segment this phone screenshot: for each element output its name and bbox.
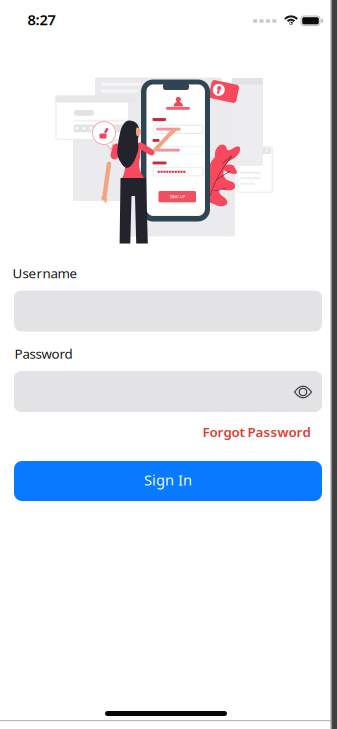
button[interactable]: Forgot Password: [202, 423, 310, 441]
staticText: ×: [264, 145, 269, 156]
staticText: Sign In: [144, 470, 192, 490]
button[interactable]: Sign In: [14, 461, 322, 501]
staticText: 8:27: [27, 10, 55, 29]
button[interactable]: Show password: [292, 385, 313, 399]
staticText: Forgot Password: [202, 423, 310, 441]
staticText: Password: [14, 345, 72, 362]
staticText: SING UP: [170, 194, 185, 199]
button[interactable]: Password: [14, 371, 322, 412]
button[interactable]: Username: [14, 290, 322, 331]
staticText: Username: [12, 264, 77, 282]
